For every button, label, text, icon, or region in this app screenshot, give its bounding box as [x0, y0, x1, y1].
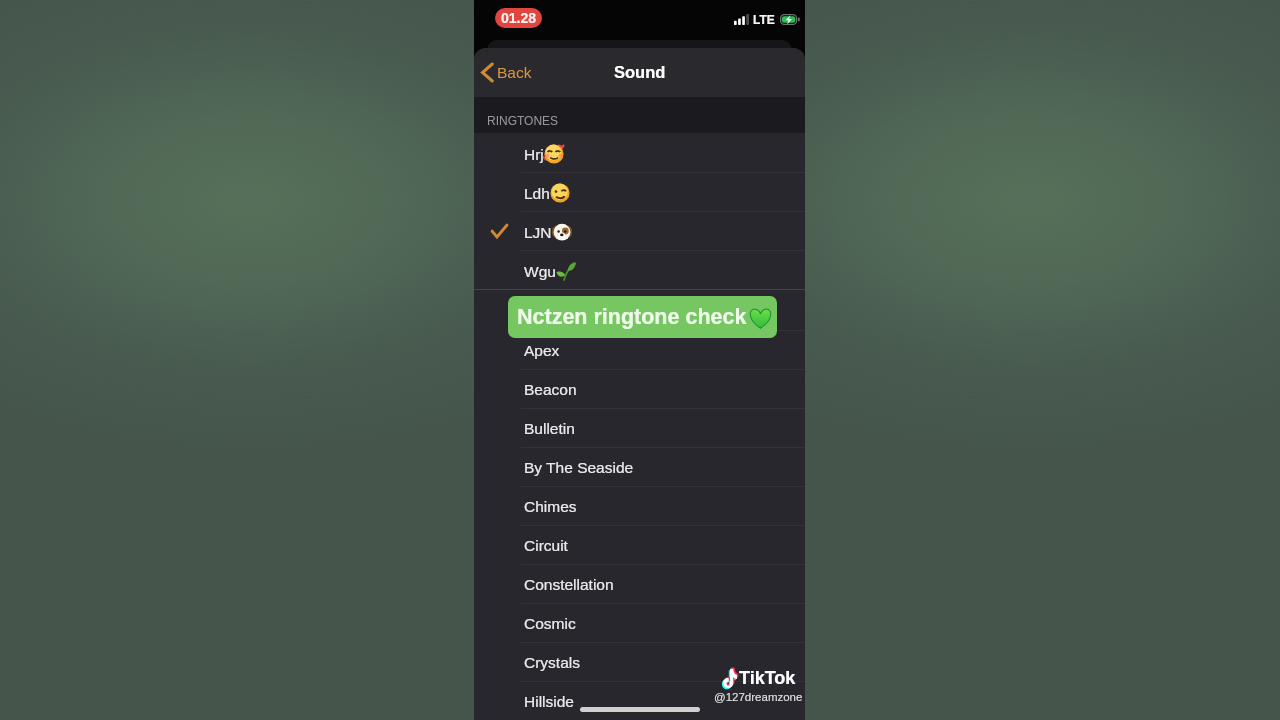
staticText: 01.28	[501, 10, 537, 26]
staticText: Sound	[614, 63, 666, 81]
button[interactable]: Nctzen ringtone check	[508, 296, 777, 338]
button[interactable]: Circuit	[474, 525, 805, 564]
staticText: Hillside	[524, 693, 574, 710]
staticText: Nctzen ringtone check	[517, 305, 747, 329]
staticText: Constellation	[524, 576, 614, 593]
staticText: Hrj	[524, 146, 544, 163]
button[interactable]: Crystals	[474, 642, 805, 681]
staticText: TikTok	[739, 668, 796, 688]
button[interactable]: Back	[480, 62, 532, 83]
other: Back	[480, 62, 494, 83]
button[interactable]: Cosmic	[474, 603, 805, 642]
button[interactable]: Constellation	[474, 564, 805, 603]
staticText: Beacon	[524, 381, 577, 398]
button[interactable]: By The Seaside	[474, 447, 805, 486]
staticText: Ldh	[524, 185, 550, 202]
staticText: Crystals	[524, 654, 580, 671]
staticText: Cosmic	[524, 615, 576, 632]
button[interactable]: LJN	[474, 211, 805, 250]
staticText: Circuit	[524, 537, 568, 554]
staticText: Wgu	[524, 263, 556, 280]
button[interactable]: Bulletin	[474, 408, 805, 447]
button[interactable]: Chimes	[474, 486, 805, 525]
staticText: RINGTONES	[487, 114, 559, 127]
button[interactable]: Hrj	[474, 133, 805, 172]
button[interactable]: Radar	[474, 289, 805, 330]
button[interactable]: Ldh	[474, 172, 805, 211]
button[interactable]: Apex	[474, 330, 805, 369]
staticText: By The Seaside	[524, 459, 634, 476]
button[interactable]: Wgu	[474, 250, 805, 289]
staticText: LTE	[753, 13, 775, 26]
staticText: Bulletin	[524, 420, 575, 437]
staticText: @127dreamzone	[714, 691, 803, 704]
staticText: Apex	[524, 342, 560, 359]
staticText: LJN	[524, 224, 552, 241]
button[interactable]: Hillside	[474, 681, 805, 720]
button[interactable]: Beacon	[474, 369, 805, 408]
staticText: Chimes	[524, 498, 577, 515]
staticText: Back	[497, 64, 532, 81]
staticText: Radar	[524, 302, 567, 319]
